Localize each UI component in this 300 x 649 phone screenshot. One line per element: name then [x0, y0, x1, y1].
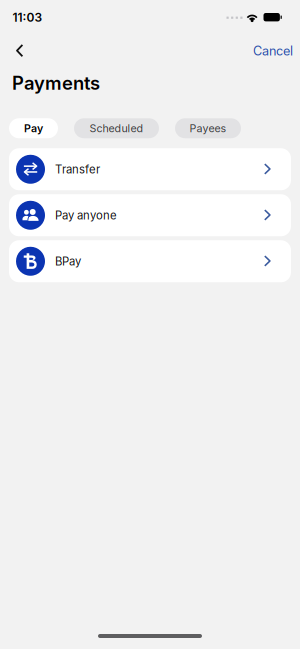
button[interactable]: Back: [0, 39, 46, 63]
staticText: Cancel: [253, 43, 293, 59]
staticText: Transfer: [55, 162, 100, 176]
staticText: Pay anyone: [55, 208, 117, 222]
button[interactable]: Pay anyone: [9, 194, 291, 236]
staticText: Payees: [189, 122, 226, 135]
button[interactable]: Payees: [175, 118, 241, 138]
staticText: BPay: [55, 254, 81, 268]
button[interactable]: Pay: [9, 118, 58, 138]
staticText: Scheduled: [89, 122, 143, 135]
staticText: Pay: [24, 122, 43, 135]
button[interactable]: Cancel: [253, 39, 300, 63]
staticText: Payments: [12, 72, 100, 94]
button[interactable]: BPay: [9, 240, 291, 282]
button[interactable]: Scheduled: [74, 118, 159, 138]
staticText: 11:03: [12, 10, 42, 25]
button[interactable]: Transfer: [9, 148, 291, 190]
